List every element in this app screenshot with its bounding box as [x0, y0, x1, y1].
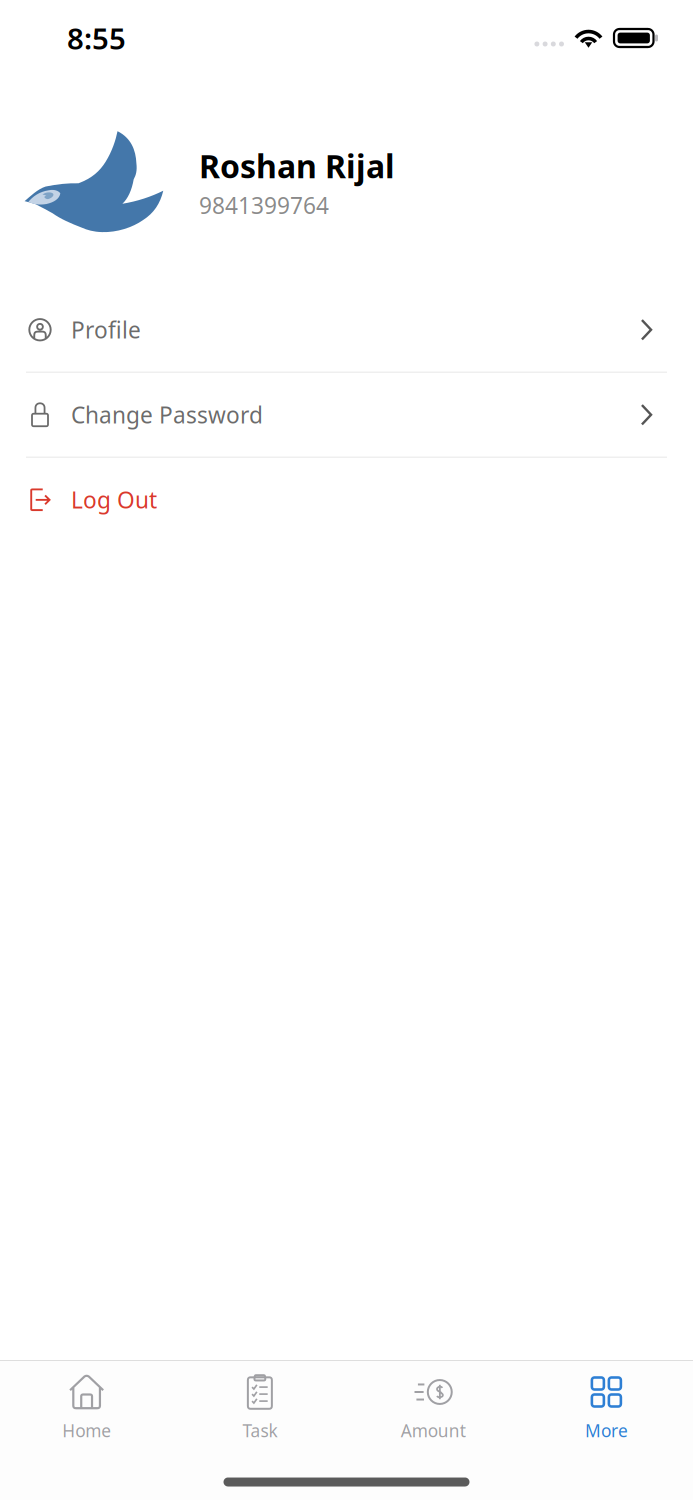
button[interactable]: Profile	[0, 288, 693, 371]
staticText: Amount	[401, 1419, 466, 1442]
button[interactable]: More	[520, 1361, 693, 1450]
staticText: 8:55	[67, 18, 126, 57]
staticText: Profile	[71, 315, 141, 345]
button[interactable]: Change Password	[0, 373, 693, 456]
button[interactable]: Home	[0, 1361, 173, 1450]
button[interactable]: Log Out	[0, 458, 693, 541]
staticText: Change Password	[71, 400, 263, 430]
staticText: Task	[242, 1419, 277, 1442]
staticText: Log Out	[71, 485, 157, 515]
button[interactable]: Task	[173, 1361, 346, 1450]
staticText: 9841399764	[199, 190, 329, 220]
button[interactable]: Amount	[346, 1361, 520, 1450]
staticText: Home	[62, 1419, 111, 1442]
staticText: More	[585, 1419, 628, 1442]
staticText: Roshan Rijal	[199, 145, 395, 187]
